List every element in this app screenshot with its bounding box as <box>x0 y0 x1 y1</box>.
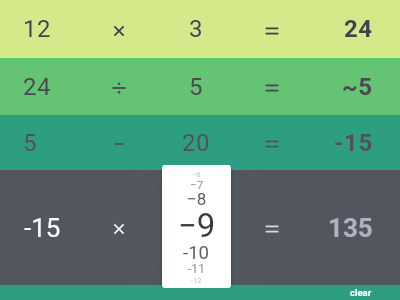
staticText: −8 <box>187 189 207 209</box>
staticText: -11 <box>188 262 206 276</box>
staticText: -15 <box>334 129 373 157</box>
staticText: -15 <box>24 213 61 243</box>
button[interactable]: -15 <box>0 170 400 285</box>
button[interactable]: Subtract <box>106 131 132 157</box>
staticText: −7 <box>190 178 204 192</box>
staticText: −6 <box>192 170 201 179</box>
staticText: 24 <box>23 73 51 101</box>
button[interactable]: 5 <box>0 115 400 170</box>
staticText: 24 <box>344 15 373 43</box>
staticText: -10 <box>183 242 210 264</box>
staticText: 12 <box>23 15 51 43</box>
staticText: 135 <box>328 213 373 243</box>
button[interactable]: clear <box>342 285 380 300</box>
button[interactable]: Equals <box>259 131 285 157</box>
staticText: 5 <box>189 73 203 101</box>
staticText: −9 <box>178 206 216 245</box>
button[interactable]: 12 <box>0 0 400 58</box>
staticText: 5 <box>23 129 37 157</box>
button[interactable]: Multiply <box>106 18 132 44</box>
button[interactable]: Equals <box>259 216 285 242</box>
staticText: clear <box>350 287 372 298</box>
button[interactable]: Multiply <box>106 216 132 242</box>
button[interactable]: −6 <box>162 165 231 288</box>
staticText: 20 <box>182 129 210 157</box>
button[interactable]: Divide <box>106 75 132 101</box>
staticText: ~5 <box>342 73 373 101</box>
button[interactable]: Equals <box>259 18 285 44</box>
staticText: -12 <box>191 276 202 285</box>
button[interactable]: Equals <box>259 75 285 101</box>
button[interactable]: 24 <box>0 58 400 115</box>
staticText: 3 <box>189 15 203 43</box>
